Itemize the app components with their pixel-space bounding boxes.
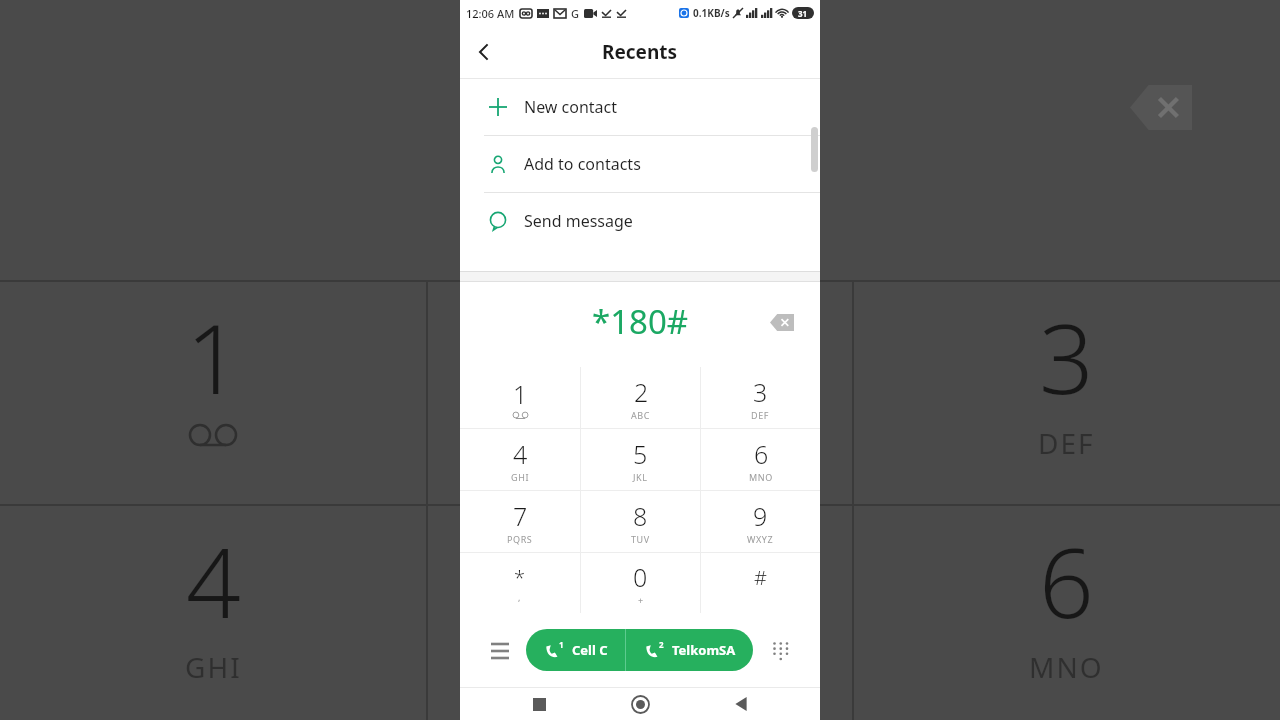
staticText: 4 bbox=[186, 515, 241, 646]
button[interactable]: 2 bbox=[581, 367, 700, 428]
button[interactable]: 9 bbox=[701, 491, 820, 552]
button[interactable]: Backspace bbox=[764, 304, 800, 340]
button[interactable]: Send message bbox=[460, 193, 820, 249]
staticText: * bbox=[514, 564, 526, 591]
staticText: 6 bbox=[754, 437, 769, 471]
button[interactable]: 4 bbox=[460, 429, 580, 490]
button[interactable]: Back bbox=[719, 688, 763, 720]
button[interactable]: Recents bbox=[517, 688, 561, 720]
button[interactable]: Back bbox=[460, 28, 508, 76]
staticText: Cell C bbox=[572, 641, 608, 659]
staticText: Add to contacts bbox=[524, 153, 641, 175]
staticText: # bbox=[754, 564, 767, 591]
button[interactable]: New contact bbox=[460, 79, 820, 135]
button[interactable]: 1 bbox=[526, 629, 625, 671]
staticText: , bbox=[518, 591, 522, 603]
button[interactable]: 3 bbox=[701, 367, 820, 428]
staticText: 9 bbox=[753, 499, 768, 533]
staticText: + bbox=[638, 594, 644, 606]
staticText: 2 bbox=[659, 639, 664, 650]
staticText: GHI bbox=[511, 471, 530, 483]
staticText: 6 bbox=[1039, 515, 1094, 646]
staticText: 31 bbox=[798, 8, 808, 19]
button[interactable]: 7 bbox=[460, 491, 580, 552]
staticText: 3 bbox=[753, 375, 768, 409]
staticText: 3 bbox=[1039, 291, 1094, 422]
staticText: JKL bbox=[633, 471, 648, 483]
staticText: ABC bbox=[631, 409, 651, 421]
staticText: MNO bbox=[749, 471, 773, 483]
button[interactable]: # bbox=[701, 553, 820, 613]
staticText: *180# bbox=[592, 299, 689, 344]
staticText: 5 bbox=[633, 437, 648, 471]
button[interactable]: 6 bbox=[701, 429, 820, 490]
staticText: MNO bbox=[1029, 648, 1104, 686]
staticText: Send message bbox=[524, 210, 633, 232]
staticText: 8 bbox=[633, 499, 648, 533]
button[interactable]: 8 bbox=[581, 491, 700, 552]
staticText: WXYZ bbox=[747, 533, 774, 545]
staticText: PQRS bbox=[507, 533, 533, 545]
staticText: TUV bbox=[631, 533, 650, 545]
staticText: GHI bbox=[185, 648, 242, 686]
staticText: 4 bbox=[513, 437, 528, 471]
button[interactable]: 1 bbox=[460, 367, 580, 428]
staticText: DEF bbox=[751, 409, 770, 421]
staticText: New contact bbox=[524, 96, 618, 118]
staticText: 1 bbox=[559, 639, 564, 650]
button[interactable]: 0 bbox=[581, 553, 700, 613]
button[interactable]: Add to contacts bbox=[460, 136, 820, 192]
button[interactable]: 5 bbox=[581, 429, 700, 490]
button[interactable]: Menu bbox=[480, 630, 520, 670]
staticText: Recents bbox=[602, 39, 678, 65]
staticText: 0 bbox=[633, 560, 648, 594]
button[interactable]: Home bbox=[618, 688, 662, 720]
staticText: 7 bbox=[513, 499, 528, 533]
button[interactable]: * bbox=[460, 553, 580, 613]
staticText: 1 bbox=[513, 377, 528, 411]
staticText: 12:06 AM bbox=[466, 6, 515, 21]
button[interactable]: 2 bbox=[626, 629, 753, 671]
staticText: G bbox=[571, 6, 579, 21]
staticText: DEF bbox=[1038, 424, 1095, 462]
staticText: 2 bbox=[634, 375, 649, 409]
staticText: 1 bbox=[186, 291, 241, 422]
button[interactable]: Dialpad bbox=[760, 630, 800, 670]
staticText: TelkomSA bbox=[672, 641, 736, 659]
staticText: 0.1KB/s bbox=[693, 6, 730, 20]
